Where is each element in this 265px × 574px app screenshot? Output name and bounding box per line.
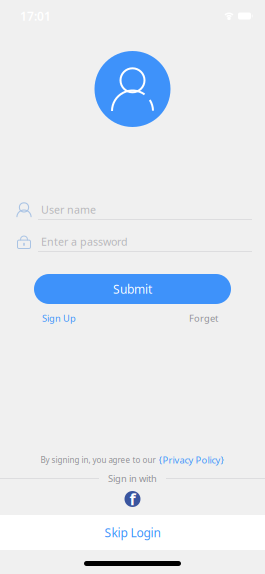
- staticText: Sign in with: [108, 472, 157, 485]
- staticText: Sign Up: [42, 312, 76, 324]
- staticText: f: [129, 488, 135, 510]
- staticText: Enter a password: [41, 234, 128, 249]
- staticText: Forget: [189, 312, 218, 324]
- button[interactable]: Sign Up: [42, 312, 76, 324]
- button[interactable]: Sign in with Facebook: [124, 491, 140, 507]
- button[interactable]: Forget: [189, 312, 218, 324]
- staticText: Submit: [113, 281, 152, 297]
- staticText: User name: [41, 202, 96, 217]
- button[interactable]: Submit: [34, 274, 231, 304]
- staticText: By signing in, you agree to our: [40, 455, 155, 465]
- staticText: {Privacy Policy}: [158, 454, 224, 466]
- button[interactable]: Skip Login: [0, 515, 265, 550]
- staticText: Skip Login: [104, 524, 160, 540]
- button[interactable]: {Privacy Policy}: [158, 454, 224, 466]
- staticText: 17:01: [20, 8, 51, 24]
